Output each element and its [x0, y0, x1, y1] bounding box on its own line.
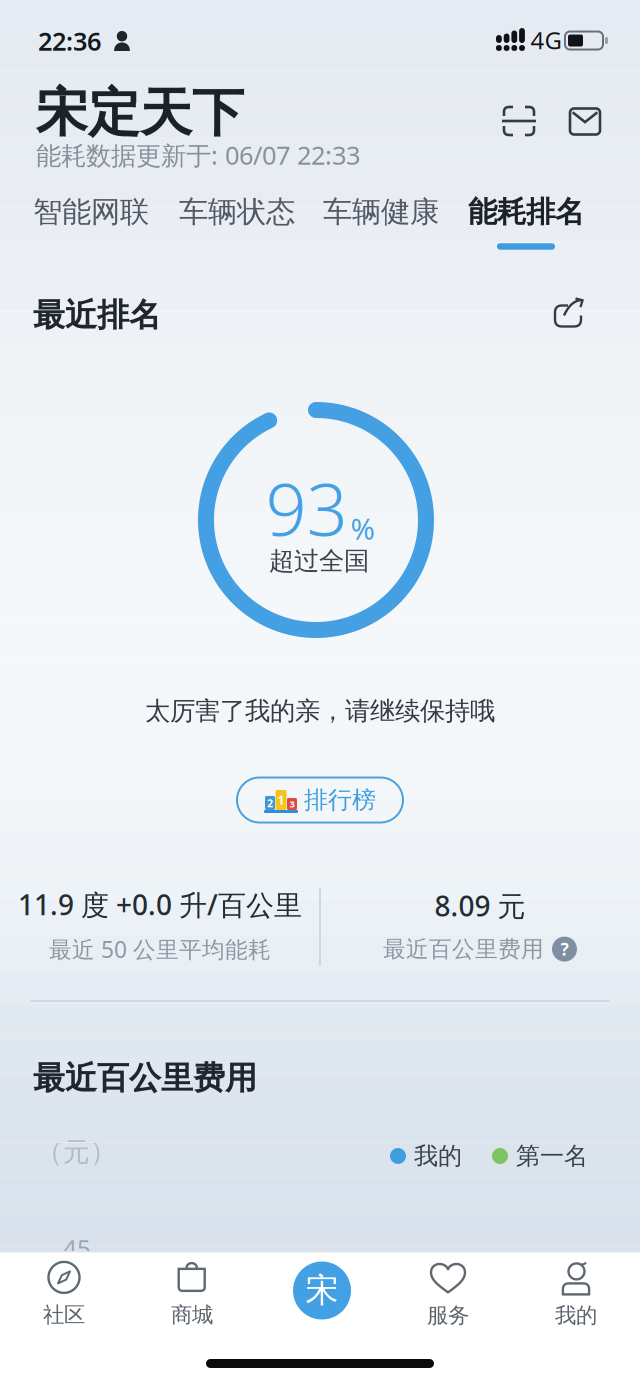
staticText: 能耗排名 [468, 194, 584, 230]
staticText: 车辆健康 [323, 194, 439, 230]
staticText: 3 [289, 798, 294, 810]
button[interactable]: 说明 [552, 937, 577, 962]
staticText: 服务 [427, 1302, 469, 1329]
staticText: 93 [265, 460, 347, 556]
staticText: ? [560, 938, 568, 961]
staticText: 最近百公里费用 [33, 1058, 257, 1098]
button[interactable]: 车辆状态 [179, 194, 295, 230]
staticText: 最近 50 公里平均能耗 [49, 934, 271, 964]
staticText: 45 [63, 1232, 91, 1264]
staticText: 最近百公里费用 [383, 935, 544, 963]
button[interactable]: 商城 [128, 1249, 256, 1341]
staticText: 我的 [414, 1141, 462, 1171]
button[interactable]: 社区 [0, 1249, 128, 1341]
staticText: 商城 [171, 1302, 213, 1328]
button[interactable]: 扫一扫 [504, 107, 534, 135]
staticText: 我的 [555, 1302, 597, 1329]
staticText: 最近排名 [33, 295, 161, 335]
button[interactable]: 2 [237, 777, 403, 822]
button[interactable]: 我的 [512, 1249, 640, 1341]
staticText: % [350, 509, 374, 548]
staticText: 智能网联 [33, 194, 149, 230]
staticText: 社区 [43, 1302, 85, 1328]
button[interactable]: 车辆健康 [323, 194, 439, 230]
staticText: （元） [36, 1136, 117, 1168]
button[interactable]: 分享 [555, 298, 585, 327]
staticText: 4G [530, 24, 561, 56]
staticText: 第一名 [516, 1141, 588, 1171]
button[interactable]: 宋 [258, 1244, 386, 1336]
staticText: 22:36 [38, 24, 101, 58]
staticText: 11.9 度 +0.0 升/百公里 [18, 886, 302, 923]
staticText: 1 [277, 792, 284, 808]
staticText: 超过全国 [269, 545, 369, 576]
staticText: 太厉害了我的亲，请继续保持哦 [145, 695, 495, 726]
button[interactable]: 智能网联 [33, 194, 149, 230]
button[interactable]: 消息 [570, 107, 600, 134]
staticText: 宋定天下 [36, 81, 244, 145]
staticText: 宋 [305, 1270, 338, 1311]
staticText: 排行榜 [304, 785, 376, 815]
button[interactable]: 服务 [384, 1249, 512, 1341]
staticText: 能耗数据更新于: 06/07 22:33 [36, 138, 360, 172]
staticText: 8.09 元 [434, 887, 525, 924]
staticText: 车辆状态 [179, 194, 295, 230]
staticText: 2 [267, 796, 273, 810]
button[interactable]: 能耗排名 [468, 194, 584, 230]
